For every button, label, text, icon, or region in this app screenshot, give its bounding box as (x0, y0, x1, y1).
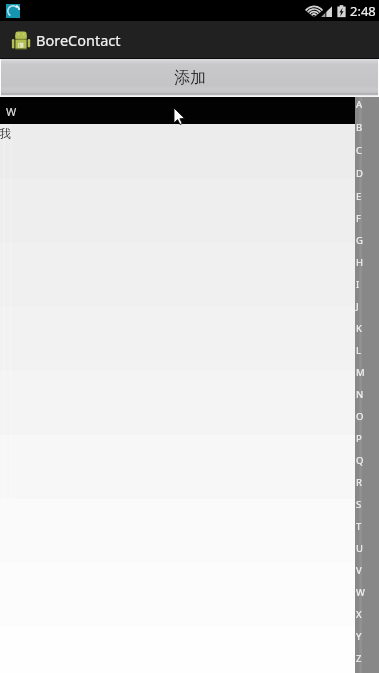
staticText: N (356, 388, 364, 401)
staticText: A (356, 98, 363, 111)
staticText: S (356, 498, 362, 511)
staticText: E (356, 190, 362, 203)
staticText: F (356, 212, 361, 225)
staticText: Q (356, 454, 364, 467)
staticText: 添加 (174, 68, 206, 88)
button[interactable]: 我 (0, 124, 379, 179)
staticText: 我 (0, 126, 11, 141)
staticText: H (356, 256, 364, 269)
staticText: I (356, 278, 360, 291)
button[interactable]: Alphabet index (355, 97, 379, 673)
staticText: R (356, 476, 362, 489)
staticText: W (6, 104, 17, 119)
staticText: O (356, 410, 364, 423)
staticText: J (356, 300, 359, 313)
staticText: G (356, 234, 363, 247)
staticText: 2:48 (350, 2, 376, 20)
staticText: W (356, 586, 365, 599)
staticText: C (356, 144, 363, 157)
staticText: X (356, 608, 362, 621)
staticText: BoreContact (36, 30, 121, 50)
staticText: P (356, 432, 362, 445)
staticText: L (356, 344, 361, 357)
staticText: K (356, 322, 362, 335)
staticText: D (356, 167, 363, 180)
staticText: M (356, 366, 365, 379)
button[interactable]: 添加 (1, 59, 378, 97)
staticText: B (356, 121, 363, 134)
staticText: Z (356, 652, 362, 665)
staticText: U (356, 542, 363, 555)
staticText: Y (356, 630, 362, 643)
staticText: V (356, 564, 362, 577)
staticText: T (356, 520, 362, 533)
